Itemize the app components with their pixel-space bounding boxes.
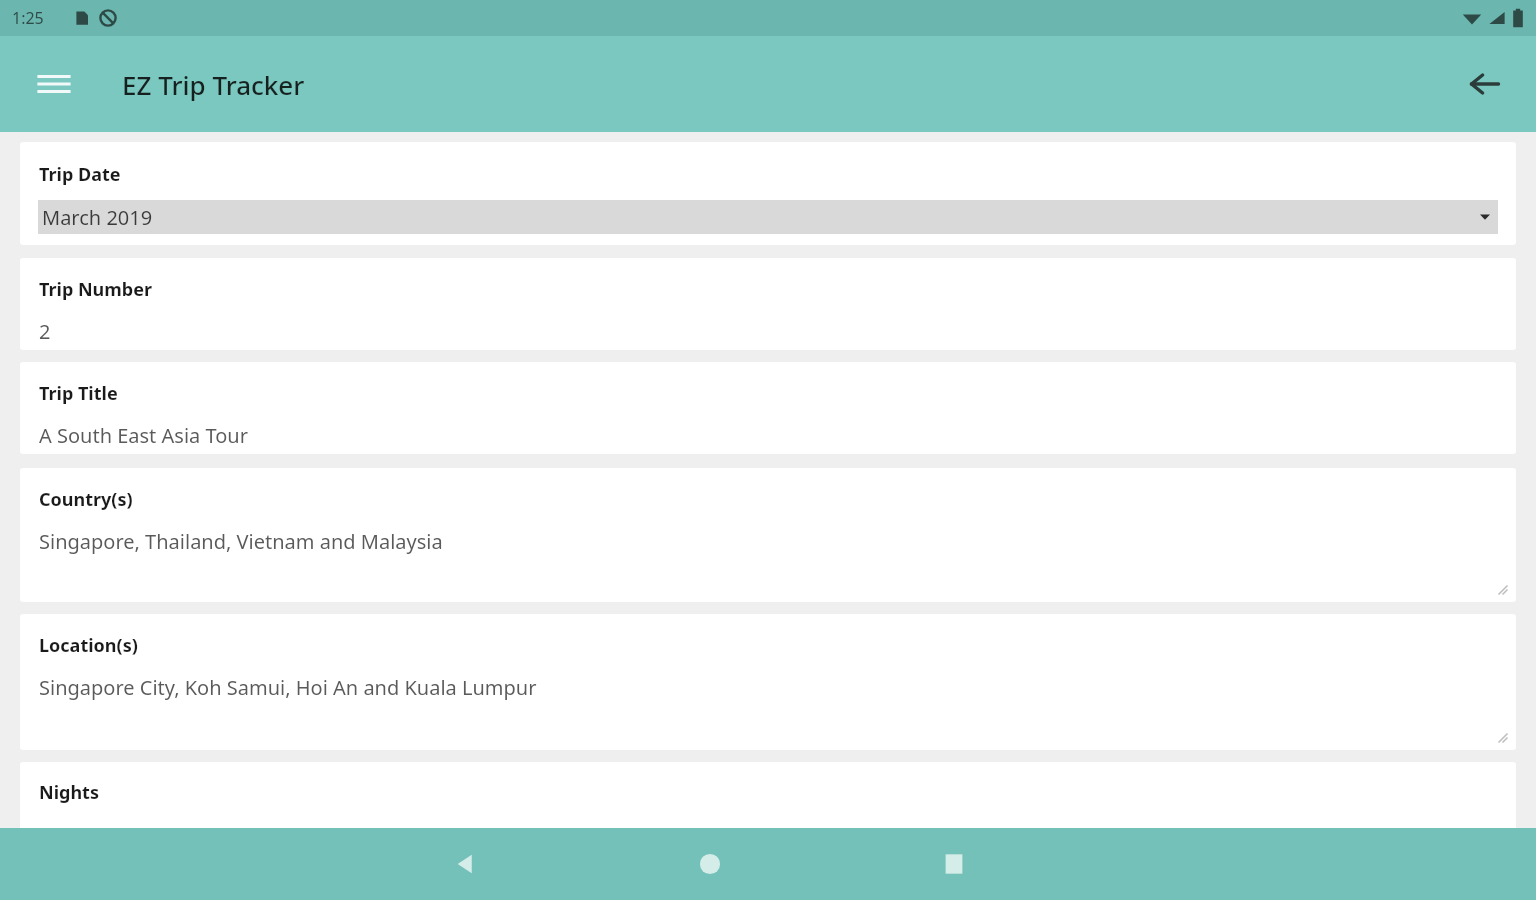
- button[interactable]: Back: [430, 828, 502, 900]
- button[interactable]: Country(s): [20, 468, 1516, 602]
- button[interactable]: Open navigation menu: [26, 56, 82, 112]
- staticText: Singapore, Thailand, Vietnam and Malaysi…: [39, 528, 443, 555]
- button[interactable]: Home: [674, 828, 746, 900]
- staticText: 2: [39, 318, 51, 345]
- button[interactable]: March 2019: [38, 200, 1498, 234]
- button[interactable]: Recent apps: [918, 828, 990, 900]
- staticText: March 2019: [42, 204, 153, 231]
- staticText: Trip Number: [39, 277, 153, 302]
- staticText: Trip Date: [39, 162, 121, 187]
- staticText: Location(s): [39, 633, 138, 658]
- staticText: Country(s): [39, 487, 133, 512]
- button[interactable]: Nights: [20, 762, 1516, 882]
- staticText: 1:25: [12, 7, 44, 29]
- button[interactable]: Trip Title: [20, 362, 1516, 454]
- staticText: Nights: [39, 780, 99, 805]
- staticText: Trip Title: [39, 381, 118, 406]
- button[interactable]: Back: [1456, 55, 1514, 113]
- button[interactable]: Trip Number: [20, 258, 1516, 350]
- staticText: Singapore City, Koh Samui, Hoi An and Ku…: [39, 674, 537, 701]
- staticText: A South East Asia Tour: [39, 422, 248, 449]
- button[interactable]: Location(s): [20, 614, 1516, 750]
- button[interactable]: Trip Date: [20, 142, 1516, 245]
- staticText: 23: [39, 821, 62, 848]
- staticText: EZ Trip Tracker: [122, 67, 305, 102]
